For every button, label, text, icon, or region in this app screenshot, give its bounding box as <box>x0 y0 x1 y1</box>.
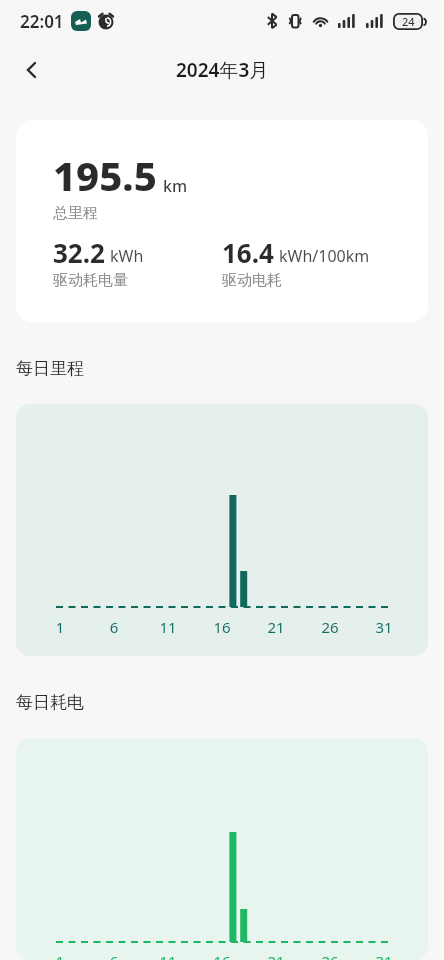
staticText: 6 <box>94 617 134 637</box>
staticText: kWh <box>110 245 144 267</box>
staticText: kWh/100km <box>279 245 370 267</box>
staticText: 每日里程 <box>16 358 84 379</box>
staticText: 21 <box>256 951 296 960</box>
staticText: 每日耗电 <box>16 692 84 713</box>
button[interactable]: 1 <box>16 404 428 656</box>
staticText: 32.2 <box>53 235 105 270</box>
staticText: 22:01 <box>20 10 64 33</box>
staticText: 21 <box>256 617 296 637</box>
staticText: 195.5 <box>53 148 157 202</box>
staticText: 6 <box>94 951 134 960</box>
staticText: 26 <box>310 617 350 637</box>
staticText: km <box>163 175 188 197</box>
button[interactable]: 195.5 <box>16 120 428 322</box>
staticText: 驱动耗电量 <box>53 271 128 290</box>
staticText: 31 <box>364 617 404 637</box>
staticText: 1 <box>40 617 80 637</box>
staticText: 11 <box>148 617 188 637</box>
button[interactable] <box>14 52 50 88</box>
staticText: 16 <box>202 951 242 960</box>
staticText: 总里程 <box>53 204 98 223</box>
staticText: 24 <box>402 14 415 29</box>
staticText: 驱动电耗 <box>222 271 282 290</box>
staticText: 31 <box>364 951 404 960</box>
staticText: 1 <box>40 951 80 960</box>
staticText: 11 <box>148 951 188 960</box>
button[interactable]: 1 <box>16 738 428 960</box>
staticText: 2024年3月 <box>176 57 269 83</box>
staticText: 16 <box>202 617 242 637</box>
staticText: 16.4 <box>222 235 274 270</box>
staticText: 26 <box>310 951 350 960</box>
